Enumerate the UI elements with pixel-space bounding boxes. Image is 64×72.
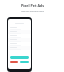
staticText: Find your new best friend bbox=[21, 10, 44, 13]
button[interactable] bbox=[8, 26, 31, 30]
button[interactable]: Adopt now bbox=[10, 56, 29, 59]
button[interactable] bbox=[8, 34, 31, 38]
button[interactable] bbox=[8, 42, 31, 46]
staticText: Pixel Pet Ads bbox=[21, 3, 44, 8]
button[interactable]: Share bbox=[20, 61, 29, 63]
button[interactable] bbox=[8, 38, 31, 42]
button[interactable] bbox=[8, 30, 31, 34]
button[interactable]: Favourite bbox=[10, 61, 18, 63]
button[interactable] bbox=[8, 46, 31, 50]
